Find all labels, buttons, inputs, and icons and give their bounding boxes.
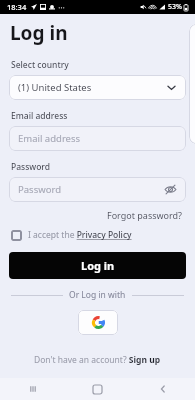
button[interactable]: Log in with Google [78, 310, 118, 335]
staticText: 18:34 [7, 2, 27, 12]
button[interactable]: (1) United States [9, 75, 186, 100]
staticText: Email address [11, 110, 68, 122]
button[interactable]: Forgot password? [105, 207, 185, 223]
button[interactable]: Home [65, 378, 130, 400]
staticText: (1) United States [18, 81, 166, 94]
staticText: Email address [18, 132, 177, 145]
button[interactable]: Log in [9, 252, 186, 279]
button[interactable]: Email address [9, 126, 186, 151]
staticText: Don't have an account? Sign up [34, 354, 161, 366]
button[interactable]: Show password [164, 183, 177, 196]
staticText: Password [18, 183, 164, 196]
button[interactable]: Password [9, 177, 186, 202]
staticText: Forgot password? [107, 209, 183, 221]
button[interactable]: Don't have an account? Sign up [32, 352, 163, 368]
button[interactable]: Back [130, 378, 195, 400]
button[interactable]: I accept the Privacy Policy [9, 227, 134, 243]
button[interactable]: Recent apps [0, 378, 65, 400]
staticText: Log in [10, 20, 68, 46]
staticText: 53% [168, 2, 182, 12]
staticText: Password [11, 161, 51, 173]
staticText: Select country [11, 59, 69, 71]
staticText: Log in [81, 258, 115, 273]
staticText: I accept the Privacy Policy [28, 229, 132, 241]
staticText: Or Log in with [69, 289, 126, 301]
